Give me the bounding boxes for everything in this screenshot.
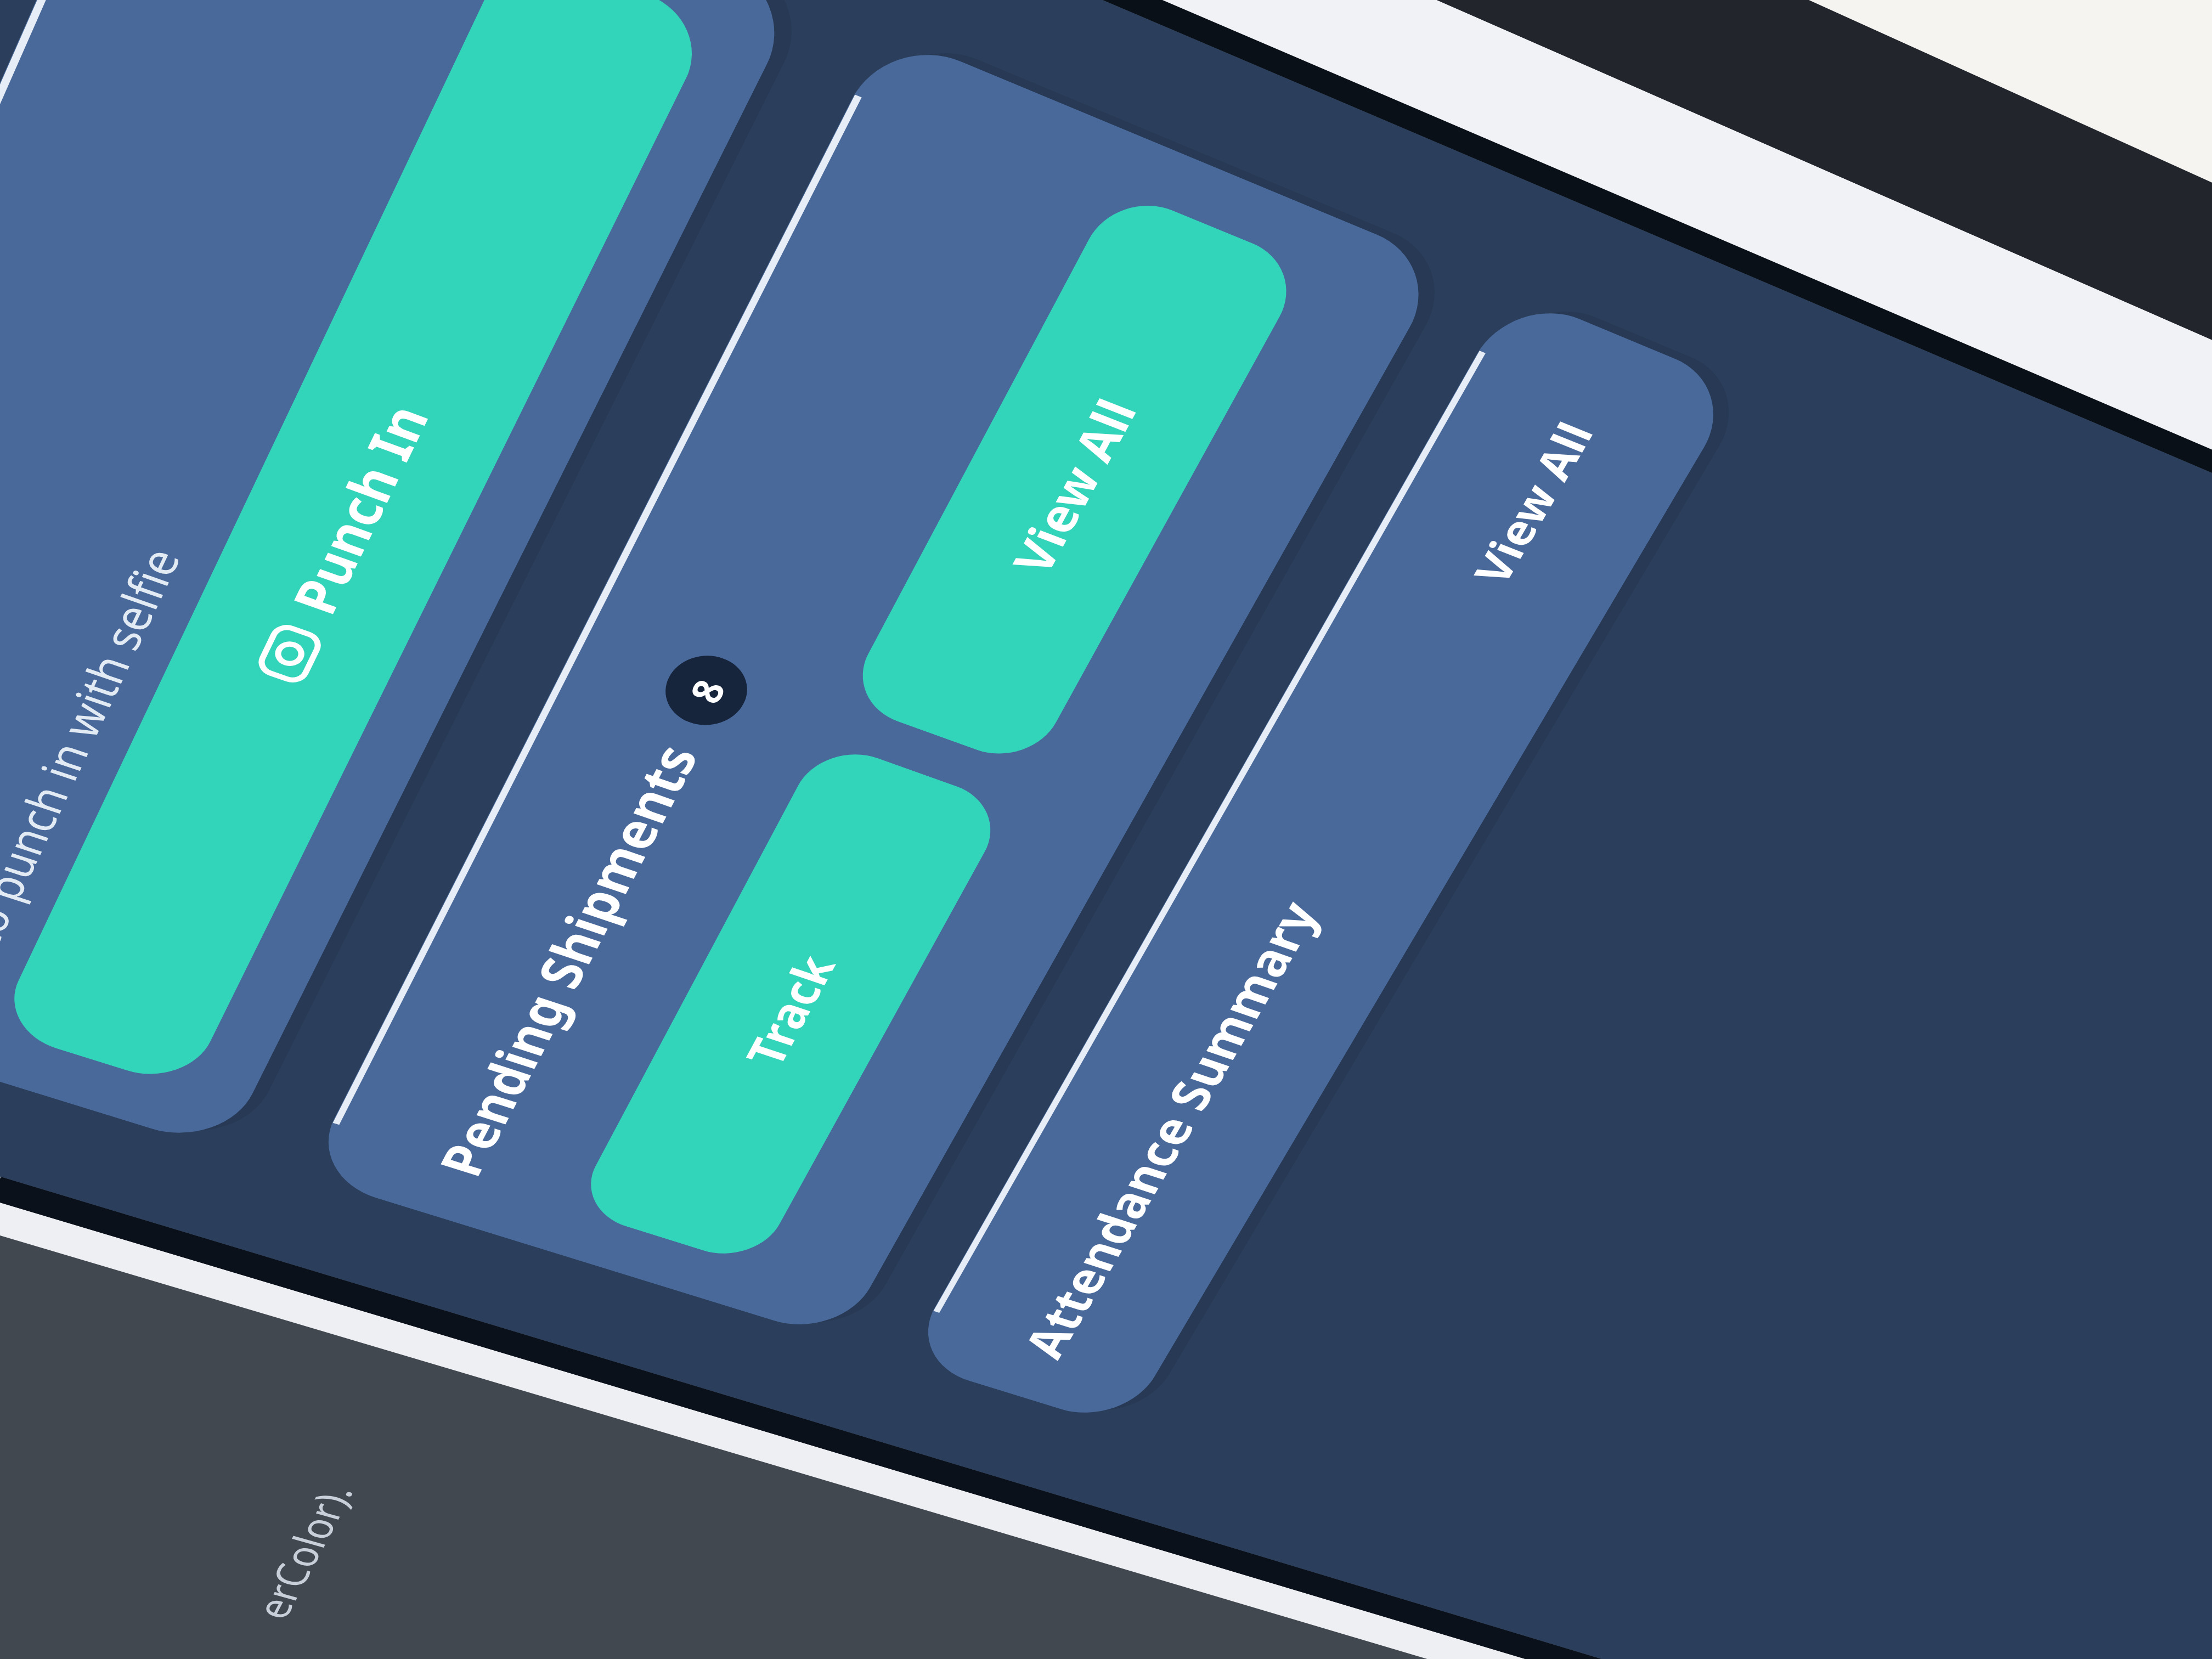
staticText: View All — [995, 388, 1152, 582]
staticText: 8 — [676, 671, 738, 710]
staticText: Pending Shipments — [420, 734, 714, 1184]
button[interactable]: Track — [572, 739, 1010, 1267]
staticText: View All — [1459, 413, 1608, 592]
staticText: Attendance Summary — [1006, 892, 1334, 1365]
button[interactable]: Punch In — [0, 0, 801, 1151]
staticText: ontainerColor = MaterialTheme.colorSchem… — [0, 735, 218, 1435]
other: Camera — [247, 618, 330, 688]
button[interactable]: Pending Shipments — [305, 31, 1446, 1341]
button[interactable]: View All — [843, 187, 1308, 769]
staticText: Punch In — [273, 393, 445, 623]
staticText: Track — [729, 946, 850, 1074]
button[interactable]: View All — [1436, 368, 1646, 610]
button[interactable]: Camera — [0, 0, 714, 1089]
staticText: erColor). — [241, 1478, 366, 1625]
staticText: Tap to punch in with selfie — [0, 539, 195, 1023]
button[interactable]: Attendance Summary — [904, 291, 1740, 1429]
